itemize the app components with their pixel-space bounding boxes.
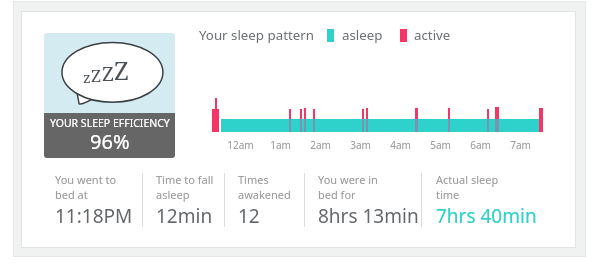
staticText: Z [91,64,102,87]
staticText: 12min [156,203,213,229]
staticText: awakened [238,187,291,202]
button[interactable]: Time to fall [156,172,214,229]
staticText: YOUR SLEEP EFFICIENCY [50,116,170,130]
staticText: Z [114,53,129,87]
staticText: asleep [156,187,190,202]
staticText: 6am [470,138,491,152]
staticText: 11:18PM [55,203,133,229]
button[interactable]: z [44,33,175,158]
staticText: Actual sleep [436,172,499,187]
staticText: Times [238,172,269,187]
staticText: 96% [90,128,130,155]
staticText: Z [102,60,114,87]
staticText: 12 [238,203,260,229]
staticText: 3am [350,138,371,152]
staticText: Your sleep pattern [199,26,314,44]
staticText: 1am [270,138,291,152]
button[interactable]: Times [238,172,291,229]
staticText: 7am [510,138,531,152]
staticText: Time to fall [156,172,214,187]
staticText: 8hrs 13min [318,203,419,229]
staticText: You went to [55,172,117,187]
staticText: z [83,67,91,87]
button[interactable]: Actual sleep [436,172,537,229]
staticText: asleep [342,26,383,44]
staticText: 4am [390,138,411,152]
staticText: 2am [310,138,331,152]
staticText: 12am [227,138,254,152]
staticText: bed for [318,187,356,202]
staticText: 5am [430,138,451,152]
button[interactable]: You went to [55,172,133,229]
staticText: bed at [55,187,88,202]
staticText: You were in [318,172,378,187]
staticText: active [414,26,451,44]
button[interactable]: You were in [318,172,419,229]
staticText: 7hrs 40min [436,203,537,229]
staticText: time [436,187,460,202]
